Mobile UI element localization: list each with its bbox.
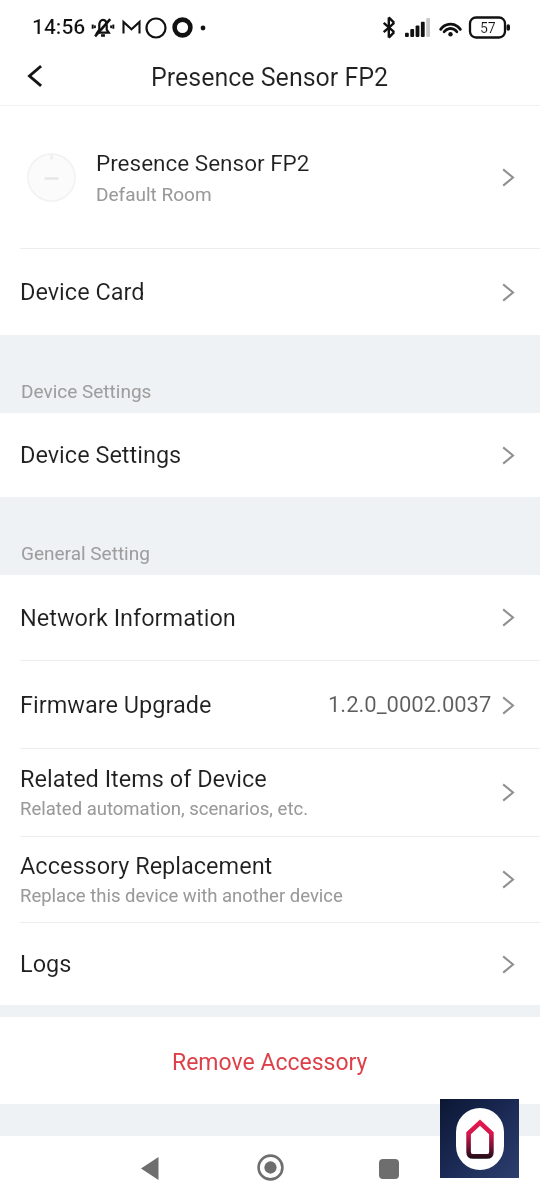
button[interactable]: Presence Sensor FP2 — [0, 106, 540, 248]
button[interactable]: Device Settings — [0, 413, 540, 497]
staticText: Replace this device with another device — [20, 885, 343, 907]
button[interactable]: Related Items of Device — [0, 749, 540, 836]
button[interactable]: Home app — [440, 1099, 519, 1178]
staticText: Device Card — [20, 278, 145, 306]
button[interactable]: Firmware Upgrade — [0, 661, 540, 748]
staticText: Presence Sensor FP2 — [151, 63, 389, 92]
staticText: Firmware Upgrade — [20, 691, 212, 719]
staticText: Device Settings — [21, 380, 152, 402]
button[interactable]: Recents — [363, 1143, 415, 1195]
button[interactable]: Home — [244, 1141, 296, 1193]
staticText: Related Items of Device — [20, 765, 267, 793]
staticText: Logs — [20, 950, 72, 978]
staticText: Related automation, scenarios, etc. — [20, 798, 309, 820]
staticText: Presence Sensor FP2 — [96, 150, 310, 176]
staticText: 14:56 — [32, 15, 86, 40]
staticText: Default Room — [96, 183, 212, 205]
staticText: Remove Accessory — [172, 1049, 368, 1076]
button[interactable]: Back — [124, 1142, 176, 1194]
staticText: Device Settings — [20, 441, 182, 469]
staticText: Accessory Replacement — [20, 852, 273, 880]
button[interactable]: Device Card — [0, 249, 540, 335]
staticText: Network Information — [20, 604, 236, 632]
staticText: 57 — [480, 20, 496, 36]
button[interactable]: Back — [4, 51, 64, 101]
button[interactable]: Logs — [0, 923, 540, 1005]
button[interactable]: Network Information — [0, 575, 540, 660]
button[interactable]: Accessory Replacement — [0, 837, 540, 922]
staticText: 1.2.0_0002.0037 — [328, 692, 492, 718]
staticText: General Setting — [21, 542, 150, 564]
button[interactable]: Remove Accessory — [0, 1017, 540, 1104]
